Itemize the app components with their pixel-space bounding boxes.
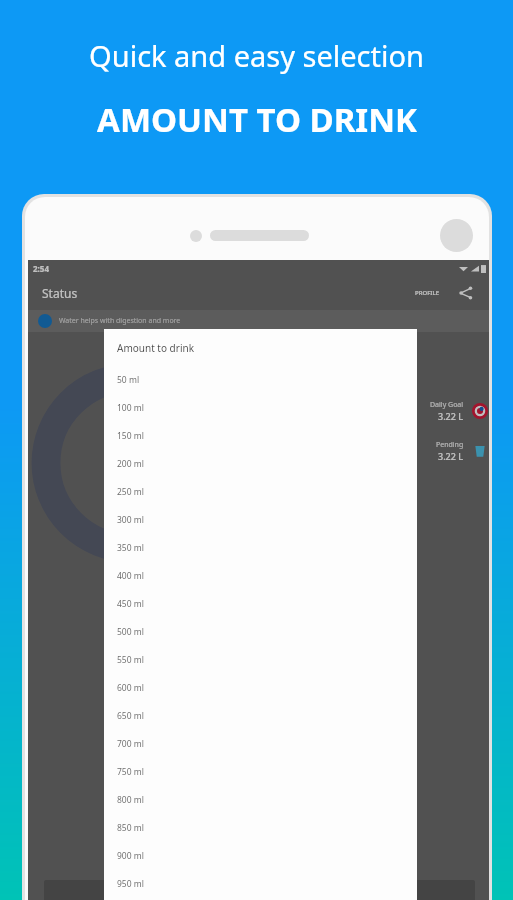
staticText: 300 ml xyxy=(117,514,144,526)
button[interactable] xyxy=(44,880,163,900)
staticText: 500 ml xyxy=(117,626,144,638)
button[interactable] xyxy=(355,880,475,900)
button[interactable]: 900 ml xyxy=(104,842,417,870)
staticText: 2:54 xyxy=(33,263,49,274)
button[interactable]: 600 ml xyxy=(104,674,417,702)
staticText: Quick and easy selection xyxy=(89,36,424,75)
button[interactable]: 950 ml xyxy=(104,870,417,898)
button[interactable]: 450 ml xyxy=(104,590,417,618)
button[interactable]: 850 ml xyxy=(104,814,417,842)
staticText: 3.22 L xyxy=(438,410,464,422)
staticText: 800 ml xyxy=(117,794,144,806)
button[interactable]: 50 ml xyxy=(104,366,417,394)
button[interactable]: 500 ml xyxy=(104,618,417,646)
staticText: 950 ml xyxy=(117,878,144,890)
button[interactable]: 650 ml xyxy=(104,702,417,730)
staticText: Status xyxy=(42,285,78,301)
button[interactable]: 350 ml xyxy=(104,534,417,562)
button[interactable]: 550 ml xyxy=(104,646,417,674)
staticText: 850 ml xyxy=(117,822,144,834)
button[interactable]: 400 ml xyxy=(104,562,417,590)
button[interactable]: 300 ml xyxy=(104,506,417,534)
staticText: PROFILE xyxy=(415,289,439,297)
staticText: 650 ml xyxy=(117,710,144,722)
staticText: Pending xyxy=(436,440,464,450)
staticText: AMOUNT TO DRINK xyxy=(97,97,417,142)
staticText: 900 ml xyxy=(117,850,144,862)
staticText: 550 ml xyxy=(117,654,144,666)
staticText: 250 ml xyxy=(117,486,144,498)
staticText: 400 ml xyxy=(117,570,144,582)
button[interactable]: 750 ml xyxy=(104,758,417,786)
staticText: 350 ml xyxy=(117,542,144,554)
staticText: 150 ml xyxy=(117,430,144,442)
button[interactable]: Share xyxy=(455,282,477,304)
staticText: 700 ml xyxy=(117,738,144,750)
staticText: 3.22 L xyxy=(438,450,464,462)
staticText: 450 ml xyxy=(117,598,144,610)
staticText: Amount to drink xyxy=(117,341,194,355)
button[interactable]: 800 ml xyxy=(104,786,417,814)
staticText: 600 ml xyxy=(117,682,144,694)
staticText: 750 ml xyxy=(117,766,144,778)
button[interactable]: 250 ml xyxy=(104,478,417,506)
button[interactable]: 150 ml xyxy=(104,422,417,450)
staticText: Daily Goal xyxy=(430,400,464,410)
button[interactable]: PROFILE xyxy=(411,285,443,301)
button[interactable]: 700 ml xyxy=(104,730,417,758)
staticText: 100 ml xyxy=(117,402,144,414)
button[interactable]: 200 ml xyxy=(104,450,417,478)
staticText: 50 ml xyxy=(117,374,140,386)
staticText: 200 ml xyxy=(117,458,144,470)
button[interactable]: Water helps with digestion and more xyxy=(38,310,481,332)
staticText: Water helps with digestion and more xyxy=(59,316,181,326)
button[interactable]: 100 ml xyxy=(104,394,417,422)
